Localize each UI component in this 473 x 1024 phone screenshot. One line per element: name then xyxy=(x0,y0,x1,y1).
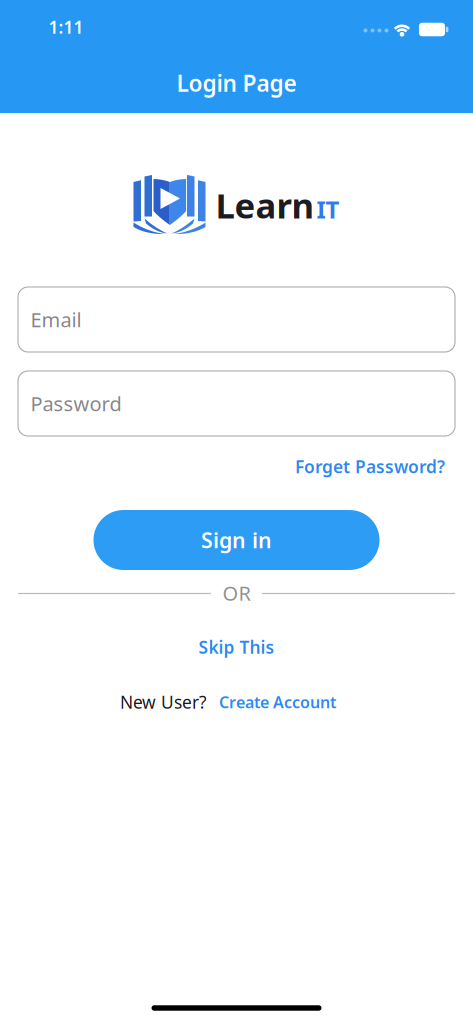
staticText: Skip This xyxy=(198,635,274,658)
staticText: 1:11 xyxy=(48,15,83,38)
button[interactable]: Sign in xyxy=(93,510,379,570)
staticText: OR xyxy=(222,580,250,606)
staticText: Forget Password? xyxy=(295,455,445,478)
staticText: Learn xyxy=(215,182,314,228)
staticText: New User? xyxy=(120,690,207,713)
staticText: Email xyxy=(30,306,81,333)
staticText: IT xyxy=(316,193,339,225)
staticText: Create Account xyxy=(219,691,336,713)
button[interactable]: Create Account xyxy=(219,691,336,713)
button[interactable]: Password xyxy=(18,371,455,436)
button[interactable]: Forget Password? xyxy=(295,455,445,478)
button[interactable]: Skip This xyxy=(198,635,274,658)
button[interactable]: Email xyxy=(18,287,455,352)
staticText: Sign in xyxy=(201,526,272,554)
staticText: Password xyxy=(30,390,121,417)
staticText: Login Page xyxy=(176,68,296,98)
